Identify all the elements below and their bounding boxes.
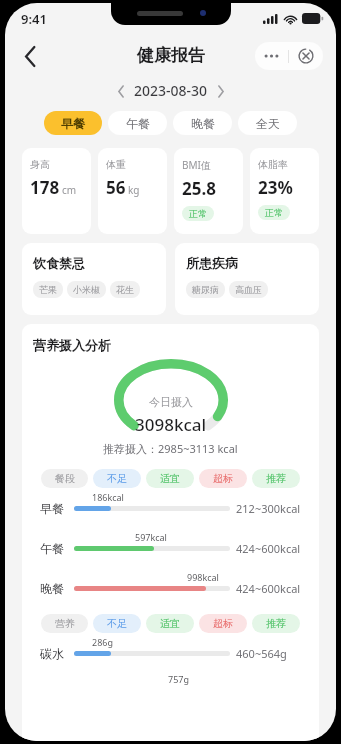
staticText: 186kcal xyxy=(92,491,124,503)
staticText: 花生 xyxy=(116,284,134,295)
staticText: 碳水 xyxy=(40,646,64,661)
button[interactable]: 晚餐 xyxy=(173,111,232,135)
button[interactable]: 所患疾病 xyxy=(175,243,319,315)
staticText: 2023-08-30 xyxy=(134,81,208,100)
button[interactable]: Close xyxy=(289,42,323,70)
staticText: 饮食禁忌 xyxy=(33,255,85,271)
staticText: 正常 xyxy=(189,208,207,219)
button[interactable]: More options xyxy=(255,42,288,70)
staticText: 超标 xyxy=(213,617,233,630)
button[interactable]: 不足 xyxy=(93,469,141,488)
button[interactable]: 推荐 xyxy=(252,469,300,488)
staticText: 757g xyxy=(168,673,189,685)
button[interactable]: Previous day xyxy=(110,80,132,102)
staticText: 不足 xyxy=(107,617,127,630)
staticText: 高血压 xyxy=(235,284,262,295)
button[interactable]: 全天 xyxy=(238,111,297,135)
staticText: 营养摄入分析 xyxy=(33,337,111,353)
staticText: kg xyxy=(128,183,140,197)
button[interactable]: 体脂率 xyxy=(250,148,319,234)
staticText: BMI值 xyxy=(182,158,211,172)
button[interactable]: 不足 xyxy=(93,614,141,633)
button[interactable]: 体重 xyxy=(98,148,167,234)
staticText: 营养 xyxy=(55,617,75,630)
staticText: 286g xyxy=(92,636,113,648)
button[interactable]: Next day xyxy=(210,80,232,102)
staticText: 体脂率 xyxy=(258,158,288,171)
button[interactable]: 适宜 xyxy=(146,469,194,488)
staticText: 424~600kcal xyxy=(236,541,301,556)
staticText: 今日摄入 xyxy=(149,395,193,409)
staticText: 所患疾病 xyxy=(186,255,238,271)
staticText: 午餐 xyxy=(126,116,150,131)
staticText: 424~600kcal xyxy=(236,581,301,596)
button[interactable]: 营养 xyxy=(41,614,88,633)
staticText: 早餐 xyxy=(61,116,85,131)
staticText: 适宜 xyxy=(160,617,180,630)
staticText: 9:41 xyxy=(21,10,47,28)
staticText: 3098kcal xyxy=(135,413,207,436)
staticText: 芒果 xyxy=(39,284,57,295)
staticText: 体重 xyxy=(106,158,126,171)
staticText: 推荐摄入：2985~3113 kcal xyxy=(103,441,238,456)
staticText: 597kcal xyxy=(135,531,167,543)
staticText: 460~564g xyxy=(236,646,287,661)
button[interactable]: 适宜 xyxy=(146,614,194,633)
button[interactable]: 身高 xyxy=(22,148,91,234)
staticText: 全天 xyxy=(256,116,280,131)
staticText: 正常 xyxy=(265,207,283,218)
staticText: 小米椒 xyxy=(73,284,100,295)
staticText: 餐段 xyxy=(55,472,75,485)
staticText: 178 xyxy=(30,176,60,199)
button[interactable]: BMI值 xyxy=(174,148,243,234)
staticText: 身高 xyxy=(30,158,50,171)
staticText: 晚餐 xyxy=(40,581,64,596)
button[interactable]: 超标 xyxy=(199,469,247,488)
staticText: 25.8 xyxy=(182,177,216,200)
staticText: 健康报告 xyxy=(137,45,205,66)
staticText: 糖尿病 xyxy=(192,284,219,295)
staticText: 晚餐 xyxy=(191,116,215,131)
staticText: 23% xyxy=(258,176,293,199)
staticText: 998kcal xyxy=(187,571,219,583)
staticText: 超标 xyxy=(213,472,233,485)
staticText: 午餐 xyxy=(40,541,64,556)
staticText: 早餐 xyxy=(40,501,64,516)
staticText: 推荐 xyxy=(266,617,286,630)
staticText: 56 xyxy=(106,176,126,199)
staticText: 推荐 xyxy=(266,472,286,485)
button[interactable]: Back xyxy=(11,37,49,75)
staticText: 适宜 xyxy=(160,472,180,485)
button[interactable]: 餐段 xyxy=(41,469,88,488)
button[interactable]: 饮食禁忌 xyxy=(22,243,166,315)
button[interactable]: 早餐 xyxy=(44,111,102,135)
staticText: cm xyxy=(62,183,77,197)
button[interactable]: 超标 xyxy=(199,614,247,633)
button[interactable]: 推荐 xyxy=(252,614,300,633)
staticText: 212~300kcal xyxy=(236,501,301,516)
button[interactable]: 午餐 xyxy=(108,111,167,135)
staticText: 不足 xyxy=(107,472,127,485)
